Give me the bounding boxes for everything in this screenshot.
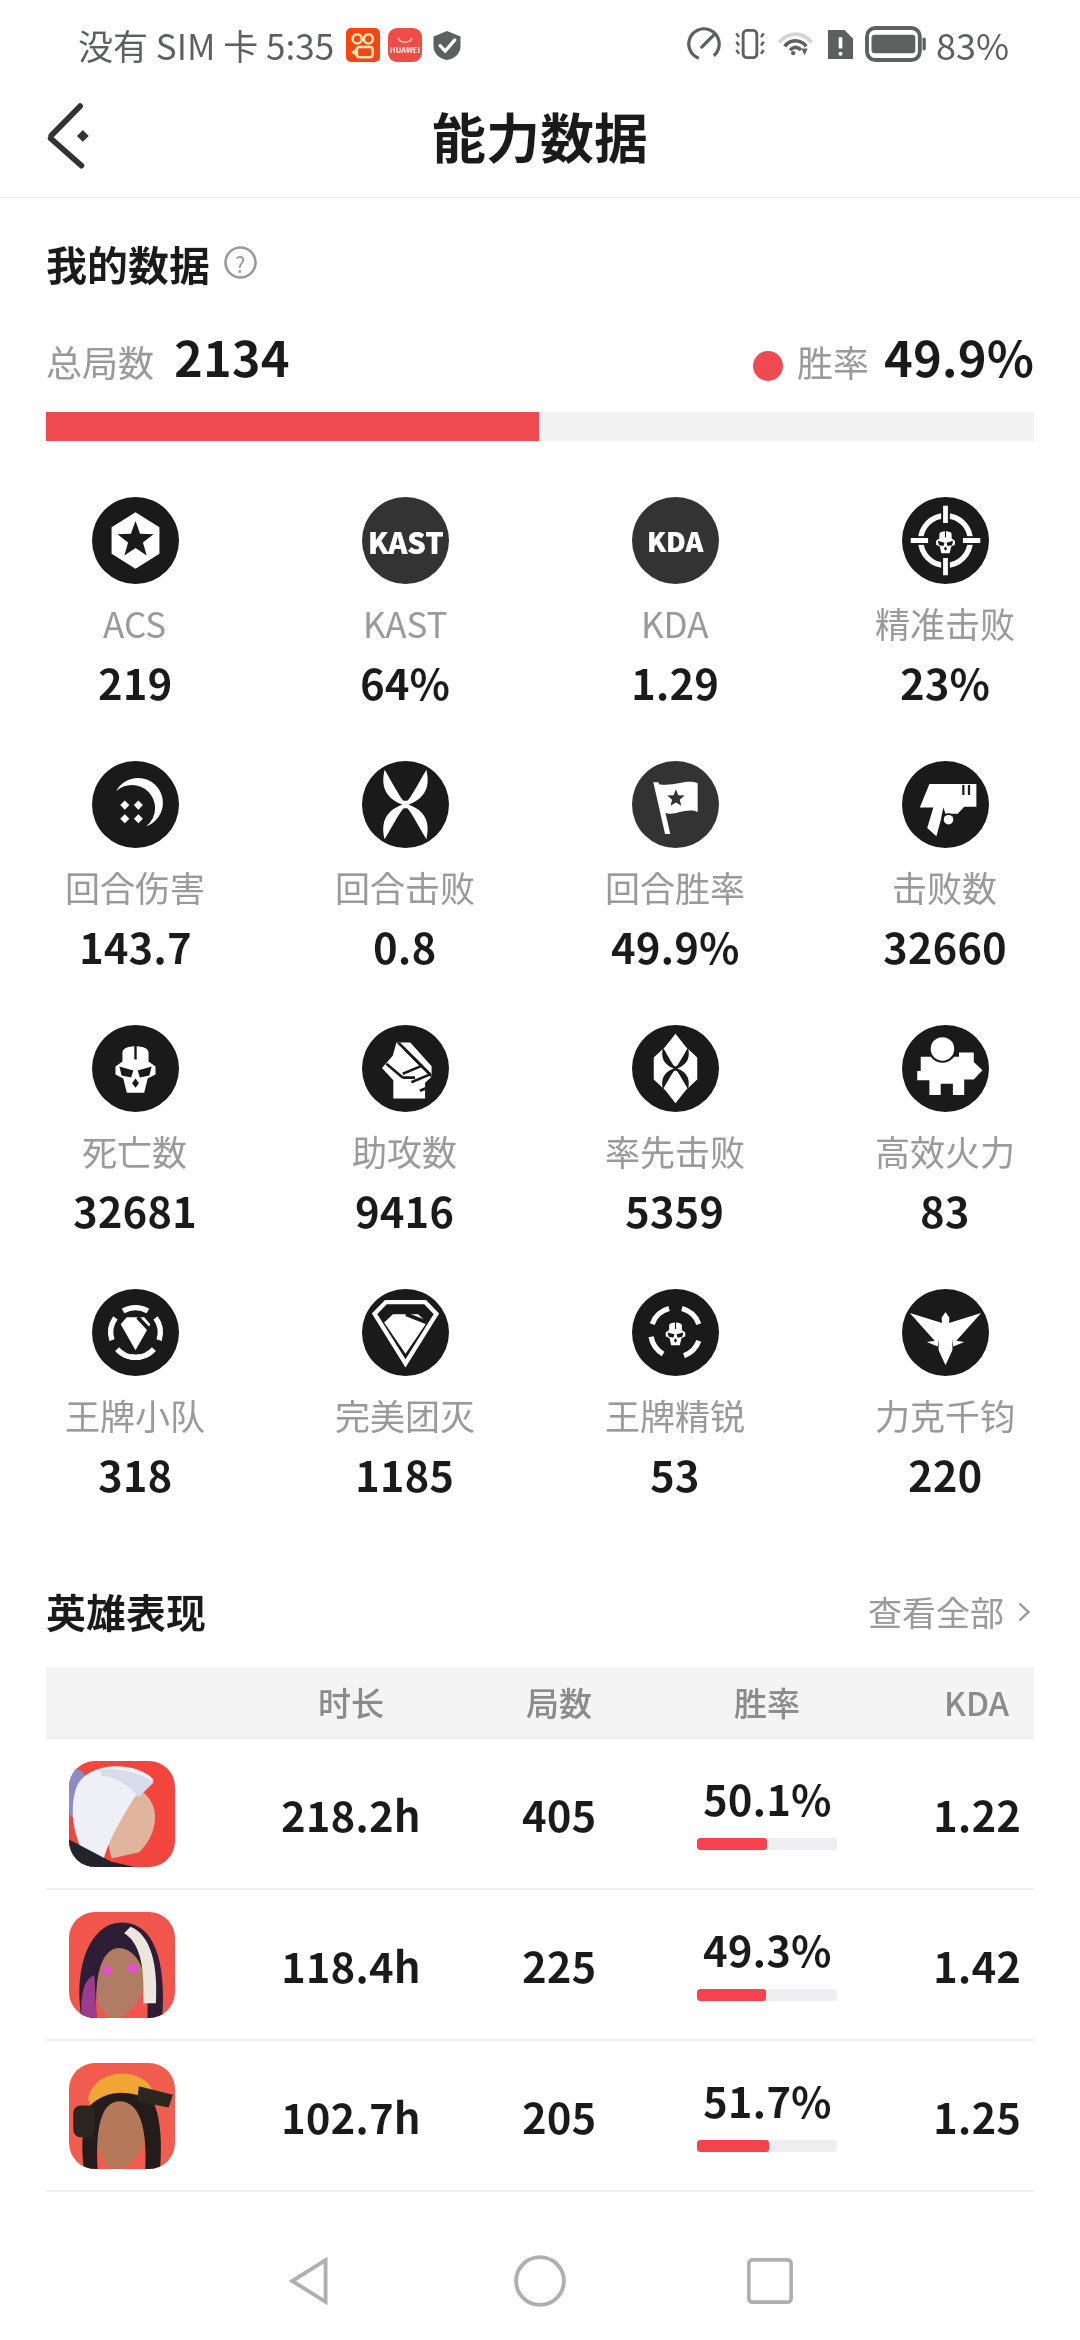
staticText: 0.8 xyxy=(373,915,437,976)
staticText: 318 xyxy=(98,1443,173,1504)
staticText: ? xyxy=(235,247,246,279)
staticText: 高效火力 xyxy=(875,1125,1016,1176)
button[interactable]: Back xyxy=(251,2221,371,2340)
staticText: 回合伤害 xyxy=(65,861,206,912)
button[interactable]: 精准击败 xyxy=(810,497,1080,712)
staticText: 回合击败 xyxy=(335,861,476,912)
staticText: KDA xyxy=(647,521,704,560)
staticText: 1.42 xyxy=(933,1934,1021,1995)
staticText: 49.9% xyxy=(611,915,740,976)
staticText: 能力数据 xyxy=(432,96,648,174)
staticText: 英雄表现 xyxy=(46,1582,206,1640)
staticText: 64% xyxy=(360,651,451,712)
staticText: 143.7 xyxy=(79,915,192,976)
button[interactable]: 力克千钧 xyxy=(810,1289,1080,1504)
button[interactable]: Back xyxy=(26,85,118,177)
staticText: 1.29 xyxy=(631,651,719,712)
button[interactable]: 死亡数 xyxy=(0,1025,270,1240)
staticText: 时长 xyxy=(318,1678,384,1726)
staticText: 102.7h xyxy=(281,2085,421,2146)
button[interactable]: 击败数 xyxy=(810,761,1080,976)
staticText: 完美团灭 xyxy=(335,1389,476,1440)
staticText: 率先击败 xyxy=(605,1125,746,1176)
staticText: 49.3% xyxy=(703,1918,832,1979)
staticText: KAST xyxy=(363,597,448,648)
button[interactable]: 率先击败 xyxy=(540,1025,810,1240)
staticText: 218.2h xyxy=(281,1783,421,1844)
button[interactable]: 完美团灭 xyxy=(270,1289,540,1504)
staticText: ACS xyxy=(103,597,167,648)
staticText: 32660 xyxy=(883,915,1007,976)
staticText: 83 xyxy=(920,1179,970,1240)
staticText: 局数 xyxy=(526,1678,592,1726)
button[interactable]: KDA xyxy=(540,497,810,712)
staticText: 回合胜率 xyxy=(605,861,746,912)
button[interactable]: 查看全部 xyxy=(868,1587,1038,1636)
staticText: 225 xyxy=(522,1934,597,1995)
staticText: 220 xyxy=(908,1443,983,1504)
button[interactable]: 王牌精锐 xyxy=(540,1289,810,1504)
staticText: 死亡数 xyxy=(82,1125,188,1176)
staticText: 总局数 xyxy=(46,335,155,387)
staticText: 胜率 xyxy=(797,335,870,387)
button[interactable]: 回合胜率 xyxy=(540,761,810,976)
staticText: 23% xyxy=(900,651,991,712)
staticText: 1185 xyxy=(355,1443,455,1504)
staticText: KDA xyxy=(944,1678,1010,1726)
staticText: 1.25 xyxy=(933,2085,1021,2146)
button[interactable]: KAST xyxy=(270,497,540,712)
staticText: 9416 xyxy=(355,1179,455,1240)
staticText: 力克千钧 xyxy=(875,1389,1016,1440)
button[interactable]: 回合伤害 xyxy=(0,761,270,976)
button[interactable]: 回合击败 xyxy=(270,761,540,976)
staticText: 51.7% xyxy=(703,2069,832,2130)
staticText: 49.9% xyxy=(884,320,1034,391)
button[interactable]: ACS xyxy=(0,497,270,712)
staticText: 击败数 xyxy=(892,861,998,912)
staticText: 没有 SIM 卡 5:35 xyxy=(78,19,335,70)
staticText: 精准击败 xyxy=(875,597,1016,648)
staticText: KAST xyxy=(368,520,444,562)
staticText: 王牌精锐 xyxy=(605,1389,746,1440)
staticText: 助攻数 xyxy=(352,1125,458,1176)
staticText: 胜率 xyxy=(734,1678,800,1726)
button[interactable]: 王牌小队 xyxy=(0,1289,270,1504)
staticText: 405 xyxy=(522,1783,597,1844)
staticText: 2134 xyxy=(174,320,290,391)
staticText: 查看全部 xyxy=(868,1587,1004,1636)
staticText: 1.22 xyxy=(933,1783,1021,1844)
button[interactable]: 助攻数 xyxy=(270,1025,540,1240)
staticText: 219 xyxy=(98,651,173,712)
staticText: 118.4h xyxy=(281,1934,421,1995)
staticText: 5359 xyxy=(625,1179,725,1240)
button[interactable]: Home xyxy=(480,2221,600,2340)
button[interactable]: 118.4h xyxy=(0,1890,1080,2039)
staticText: 王牌小队 xyxy=(65,1389,206,1440)
button[interactable]: 我的数据 xyxy=(46,233,257,292)
staticText: 50.1% xyxy=(703,1767,832,1828)
staticText: 53 xyxy=(650,1443,700,1504)
button[interactable]: 高效火力 xyxy=(810,1025,1080,1240)
button[interactable]: 102.7h xyxy=(0,2041,1080,2190)
staticText: 我的数据 xyxy=(46,233,210,292)
staticText: HUAWEI xyxy=(390,44,420,55)
button[interactable]: 218.2h xyxy=(0,1739,1080,1888)
button[interactable]: Recents xyxy=(710,2221,830,2340)
staticText: 83% xyxy=(936,18,1010,70)
staticText: KDA xyxy=(641,597,709,648)
staticText: 32681 xyxy=(73,1179,197,1240)
staticText: 205 xyxy=(522,2085,597,2146)
